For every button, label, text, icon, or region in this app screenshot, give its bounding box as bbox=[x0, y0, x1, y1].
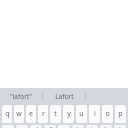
button[interactable]: j bbox=[86, 125, 98, 128]
button[interactable]: y bbox=[63, 105, 74, 123]
button[interactable]: t bbox=[50, 105, 61, 123]
staticText: o bbox=[105, 109, 110, 119]
staticText: e bbox=[29, 109, 33, 119]
button[interactable]: s bbox=[16, 125, 28, 128]
button[interactable]: g bbox=[58, 125, 70, 128]
button[interactable]: a bbox=[2, 125, 14, 128]
staticText: w bbox=[16, 109, 22, 119]
button[interactable]: q bbox=[2, 105, 12, 123]
button[interactable]: h bbox=[72, 125, 84, 128]
button[interactable]: Lafort bbox=[43, 88, 85, 104]
staticText: Lafort bbox=[55, 92, 74, 101]
staticText: j bbox=[91, 125, 93, 128]
button[interactable]: "lafort" bbox=[0, 88, 42, 104]
button[interactable]: p bbox=[115, 105, 126, 123]
button[interactable]: e bbox=[26, 105, 36, 123]
staticText: h bbox=[76, 125, 81, 128]
staticText: u bbox=[79, 109, 84, 119]
staticText: t bbox=[54, 109, 57, 119]
button[interactable]: r bbox=[38, 105, 48, 123]
staticText: q bbox=[5, 109, 10, 119]
staticText: d bbox=[34, 125, 39, 128]
staticText: y bbox=[67, 109, 71, 119]
button[interactable]: d bbox=[30, 125, 42, 128]
button[interactable]: w bbox=[14, 105, 24, 123]
staticText: l bbox=[119, 125, 121, 128]
staticText: p bbox=[118, 109, 123, 119]
button[interactable]: l bbox=[114, 125, 126, 128]
button[interactable]: o bbox=[102, 105, 113, 123]
staticText: r bbox=[42, 109, 45, 119]
staticText: i bbox=[94, 109, 96, 119]
staticText: f bbox=[49, 125, 52, 128]
button[interactable]: i bbox=[89, 105, 100, 123]
staticText: k bbox=[104, 125, 108, 128]
button[interactable]: f bbox=[44, 125, 56, 128]
button[interactable]: k bbox=[100, 125, 112, 128]
staticText: "lafort" bbox=[10, 92, 32, 101]
button[interactable]: u bbox=[76, 105, 87, 123]
